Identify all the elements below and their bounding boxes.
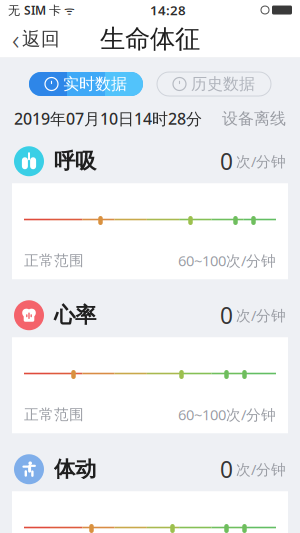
staticText: 次/分钟: [236, 151, 286, 171]
staticText: 次/分钟: [236, 305, 286, 325]
staticText: 呼吸: [54, 148, 96, 174]
staticText: 0: [220, 300, 233, 330]
staticText: 0: [220, 146, 233, 176]
button[interactable]: 心率: [0, 293, 300, 337]
staticText: ᯤ: [61, 2, 75, 18]
staticText: 14:28: [150, 1, 186, 19]
staticText: 60~100次/分钟: [178, 251, 276, 270]
staticText: 2019年07月10日14时28分: [14, 108, 202, 129]
button[interactable]: 历史数据: [157, 72, 271, 96]
button[interactable]: 呼吸: [0, 139, 300, 183]
staticText: 正常范围: [24, 405, 84, 423]
staticText: 次/分钟: [236, 459, 286, 479]
staticText: ‹: [12, 20, 19, 58]
button[interactable]: ‹: [0, 20, 72, 58]
staticText: 返回: [22, 27, 60, 50]
staticText: 0: [220, 454, 233, 484]
staticText: 体动: [54, 456, 96, 482]
staticText: 设备离线: [222, 109, 286, 128]
staticText: 生命体征: [100, 23, 200, 54]
staticText: 实时数据: [63, 74, 127, 94]
staticText: 心率: [54, 302, 96, 328]
staticText: 正常范围: [24, 251, 84, 269]
staticText: 无 SIM 卡: [8, 2, 61, 18]
staticText: 历史数据: [191, 74, 255, 94]
button[interactable]: 实时数据: [29, 72, 143, 96]
staticText: 60~100次/分钟: [178, 405, 276, 424]
button[interactable]: 体动: [0, 447, 300, 491]
